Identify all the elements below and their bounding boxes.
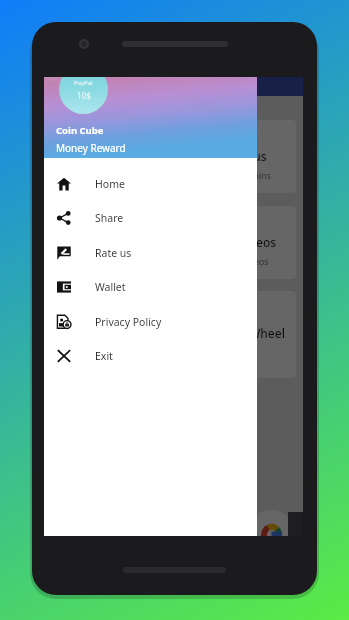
button[interactable]: Watch Videos [51,206,296,279]
staticText: Money Reward [56,141,126,155]
button[interactable]: Share [44,201,257,235]
staticText: Earn with videos [199,255,269,267]
staticText: Exit [95,349,113,363]
staticText: Share [95,211,124,225]
staticText: Spin the Wheel [199,325,285,341]
staticText: Rate us [95,246,132,260]
button[interactable]: Exit [44,339,257,373]
staticText: PayPal [74,79,93,87]
staticText: 10$ [77,90,91,101]
staticText: Watch Videos [199,234,277,250]
button[interactable]: Wallet [44,270,257,304]
staticText: Home [95,177,125,191]
button[interactable]: Daily Bonus [51,120,296,193]
button[interactable]: Rate us [44,236,257,270]
button[interactable]: Search with Google [247,510,295,536]
staticText: Coin Cube [56,124,104,137]
staticText: Wallet [95,280,126,294]
button[interactable]: Home [44,167,257,201]
button[interactable]: Privacy Policy [44,305,257,339]
button[interactable]: Spin the Wheel [51,291,296,378]
staticText: Daily Bonus [199,148,267,164]
staticText: Collect free coins [199,169,271,181]
staticText: Privacy Policy [95,315,162,329]
